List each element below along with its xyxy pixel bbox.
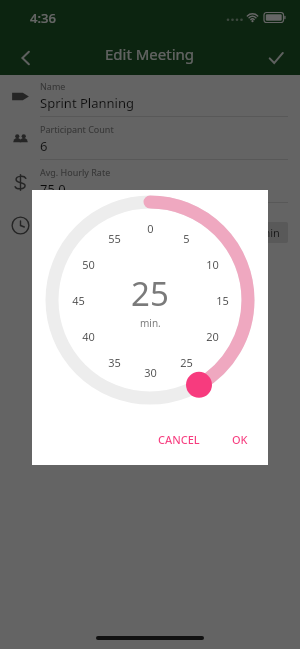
staticText: 0	[147, 221, 154, 236]
button[interactable]: Name	[0, 75, 300, 118]
staticText: 20	[206, 329, 219, 344]
staticText: 5	[183, 231, 190, 246]
button[interactable]: Duration	[0, 204, 300, 247]
button[interactable]: Back	[8, 40, 44, 76]
staticText: 40	[82, 329, 95, 344]
staticText: 35	[108, 355, 121, 370]
staticText: 4:36	[30, 9, 56, 27]
staticText: Name	[40, 80, 66, 92]
staticText: CANCEL	[158, 432, 200, 447]
button[interactable]: Save	[258, 40, 294, 76]
staticText: 45	[72, 293, 85, 308]
staticText: Avg. Hourly Rate	[40, 166, 111, 178]
staticText: 25	[131, 271, 169, 316]
staticText: Edit Meeting	[105, 44, 195, 64]
staticText: 15	[216, 293, 229, 308]
staticText: min	[260, 225, 280, 240]
button[interactable]: min	[260, 225, 280, 240]
staticText: 10	[206, 257, 219, 272]
button[interactable]: Participant Count	[0, 118, 300, 161]
staticText: min.	[140, 316, 161, 330]
staticText: Sprint Planning	[40, 94, 134, 112]
button[interactable]: Avg. Hourly Rate	[0, 161, 300, 204]
staticText: OK	[232, 432, 248, 447]
staticText: 25	[180, 355, 193, 370]
staticText: 55	[108, 231, 121, 246]
staticText: 50	[82, 257, 95, 272]
staticText: 30	[144, 365, 157, 380]
staticText: Participant Count	[40, 123, 114, 135]
staticText: 6	[40, 137, 48, 155]
staticText: 75.0	[40, 180, 66, 198]
button[interactable]: OK	[224, 426, 256, 453]
button[interactable]: CANCEL	[150, 426, 208, 453]
button[interactable]: 0	[40, 190, 260, 410]
